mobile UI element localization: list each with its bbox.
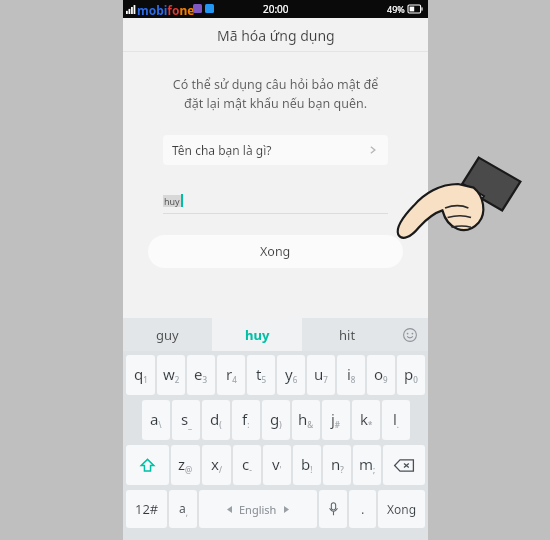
button[interactable]: o9: [367, 355, 395, 395]
button[interactable]: z@: [171, 445, 200, 485]
staticText: l.: [393, 409, 400, 431]
staticText: Có thể sử dụng câu hỏi bảo mật để đặt lạ…: [141, 76, 410, 112]
button[interactable]: l.: [382, 400, 410, 440]
button[interactable]: s_: [172, 400, 200, 440]
button[interactable]: 12#: [126, 490, 167, 528]
staticText: i8: [347, 364, 356, 386]
button[interactable]: Emoji: [392, 318, 428, 351]
staticText: t5: [256, 364, 266, 386]
staticText: z@: [178, 454, 193, 476]
button[interactable]: Symbols: [169, 490, 197, 528]
button[interactable]: g): [262, 400, 290, 440]
staticText: huy: [164, 195, 180, 207]
staticText: n?: [331, 454, 344, 476]
staticText: a\: [150, 409, 162, 431]
staticText: d(: [210, 409, 222, 431]
staticText: h&: [298, 409, 314, 431]
button[interactable]: Space: [199, 490, 317, 528]
button[interactable]: Xong: [378, 490, 425, 528]
button[interactable]: huy: [163, 190, 388, 214]
staticText: y6: [285, 364, 298, 386]
staticText: r4: [226, 364, 237, 386]
button[interactable]: a\: [142, 400, 170, 440]
staticText: e3: [194, 364, 208, 386]
staticText: m;: [359, 454, 376, 476]
button[interactable]: q1: [126, 355, 155, 395]
button[interactable]: r4: [217, 355, 245, 395]
staticText: c-: [242, 454, 252, 476]
button[interactable]: Tên cha bạn là gì?: [163, 135, 388, 165]
staticText: f:: [242, 409, 250, 431]
button[interactable]: b!: [293, 445, 321, 485]
staticText: v': [272, 454, 282, 476]
staticText: Mã hóa ứng dụng: [217, 26, 335, 45]
button[interactable]: h&: [292, 400, 320, 440]
button[interactable]: guy: [123, 318, 212, 351]
button[interactable]: hit: [302, 318, 392, 351]
button[interactable]: w2: [157, 355, 185, 395]
staticText: k*: [360, 409, 373, 431]
staticText: Xong: [387, 501, 417, 517]
button[interactable]: Voice input: [319, 490, 347, 528]
button[interactable]: Shift: [126, 445, 169, 485]
button[interactable]: k*: [352, 400, 380, 440]
staticText: 49%: [387, 3, 405, 15]
button[interactable]: y6: [277, 355, 305, 395]
staticText: 12#: [135, 500, 159, 518]
staticText: Xong: [260, 243, 291, 260]
staticText: g): [270, 409, 282, 431]
button[interactable]: e3: [187, 355, 215, 395]
staticText: j#: [331, 409, 341, 431]
button[interactable]: c-: [233, 445, 261, 485]
button[interactable]: x/: [202, 445, 231, 485]
button[interactable]: huy: [212, 318, 302, 351]
button[interactable]: v': [263, 445, 291, 485]
staticText: English: [239, 502, 277, 517]
button[interactable]: .: [349, 490, 376, 528]
button[interactable]: m;: [353, 445, 381, 485]
staticText: 20:00: [263, 2, 289, 16]
button[interactable]: f:: [232, 400, 260, 440]
staticText: guy: [156, 326, 179, 344]
staticText: u7: [314, 364, 328, 386]
staticText: mobifone: [137, 2, 195, 18]
button[interactable]: j#: [322, 400, 350, 440]
button[interactable]: Backspace: [383, 445, 425, 485]
button[interactable]: Xong: [148, 235, 403, 268]
staticText: p0: [404, 364, 418, 386]
staticText: .: [361, 500, 365, 518]
staticText: o9: [374, 364, 388, 386]
staticText: w2: [163, 364, 180, 386]
staticText: x/: [211, 454, 222, 476]
staticText: Tên cha bạn là gì?: [172, 142, 367, 158]
staticText: hit: [339, 326, 356, 344]
staticText: s_: [181, 409, 192, 431]
staticText: b!: [301, 454, 313, 476]
button[interactable]: u7: [307, 355, 335, 395]
button[interactable]: n?: [323, 445, 351, 485]
button[interactable]: d(: [202, 400, 230, 440]
staticText: huy: [245, 326, 270, 344]
staticText: a,: [179, 500, 188, 519]
button[interactable]: p0: [397, 355, 425, 395]
staticText: q1: [134, 364, 148, 386]
button[interactable]: i8: [337, 355, 365, 395]
button[interactable]: t5: [247, 355, 275, 395]
